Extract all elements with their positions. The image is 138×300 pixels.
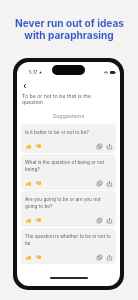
button[interactable]: Back [20,81,30,91]
staticText: Are you going to be or are you not going… [25,196,112,209]
button[interactable]: Is it better to be or not to be? [21,124,116,153]
button[interactable]: Copy [96,254,102,260]
button[interactable]: Thumbs up [25,180,31,186]
button[interactable]: Are you going to be or are you not going… [21,191,116,227]
button[interactable]: Share [106,254,112,260]
staticText: To be or not to be that is the question [22,93,110,106]
button[interactable]: Thumbs down [35,143,41,149]
button[interactable]: Share [106,217,112,223]
staticText: The question is whether to be or not to … [25,233,112,246]
staticText: Is it better to be or not to be? [25,129,89,135]
button[interactable]: Copy [96,217,102,223]
button[interactable]: Copy [96,180,102,186]
button[interactable]: Copy [96,143,102,149]
button[interactable]: Thumbs up [25,254,31,260]
staticText: What is the question of being or not bei… [25,159,112,172]
button[interactable]: What is the question of being or not bei… [21,154,116,190]
button[interactable]: Thumbs down [35,180,41,186]
staticText: Suggestions [17,113,120,120]
staticText: Never run out of ideas [15,17,124,29]
staticText: 5:17 [29,70,38,75]
button[interactable]: Thumbs down [35,217,41,223]
button[interactable]: Thumbs up [25,143,31,149]
button[interactable]: Thumbs down [35,254,41,260]
staticText: with paraphrasing [24,29,114,41]
button[interactable]: The question is whether to be or not to … [21,228,116,264]
button[interactable]: Share [106,180,112,186]
button[interactable]: Thumbs up [25,217,31,223]
button[interactable]: Share [106,143,112,149]
